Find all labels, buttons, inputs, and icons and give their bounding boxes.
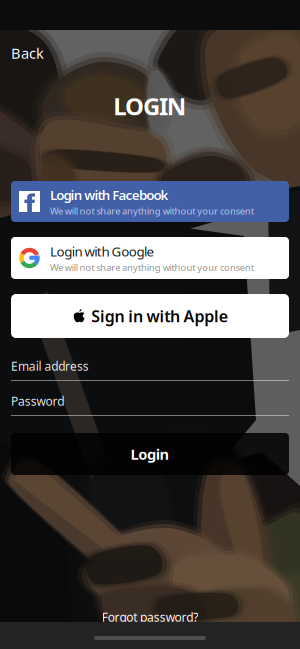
staticText: We will not share anything without your … (50, 261, 254, 274)
staticText: Sign in with Apple (91, 305, 228, 327)
staticText: LOGIN (113, 90, 187, 122)
staticText: Password (11, 393, 64, 409)
button[interactable]: Login with Google (11, 237, 289, 279)
staticText: Login with Google (50, 242, 155, 260)
button[interactable]: Forgot password? (95, 610, 205, 624)
staticText: Back (11, 43, 44, 63)
button[interactable]: Login with Facebook (11, 181, 289, 222)
button[interactable]: Login (11, 433, 289, 475)
staticText: Login (130, 444, 170, 464)
button[interactable]: Back (0, 41, 63, 65)
staticText: We will not share anything without your … (50, 205, 254, 217)
staticText: Forgot password? (102, 609, 198, 625)
staticText: Login with Facebook (50, 186, 169, 204)
staticText: Email address (11, 358, 89, 374)
button[interactable]: Sign in with Apple (11, 294, 289, 338)
